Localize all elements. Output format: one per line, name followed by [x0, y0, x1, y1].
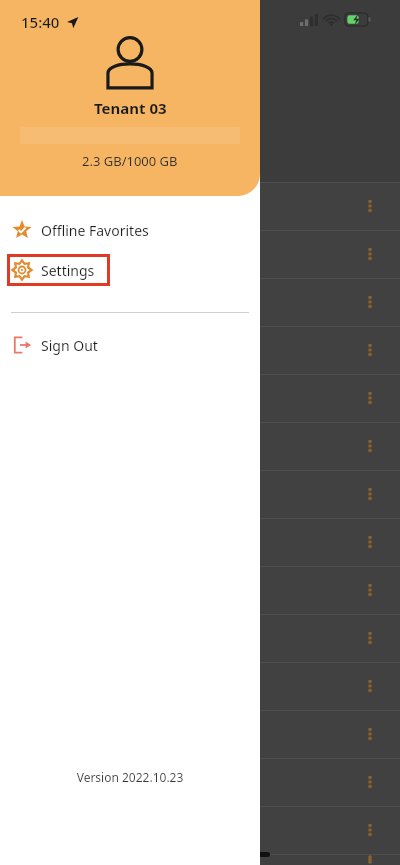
button[interactable]: Offline Favorites	[12, 220, 149, 240]
staticText: Sign Out	[41, 336, 98, 355]
button[interactable]: Settings	[12, 260, 110, 280]
button[interactable]: More options	[0, 326, 400, 374]
staticText: Tenant 03	[94, 98, 167, 118]
button[interactable]: More options	[360, 772, 380, 792]
button[interactable]: More options	[0, 518, 400, 566]
button[interactable]: More options	[360, 292, 380, 312]
button[interactable]: Sign Out	[12, 335, 98, 355]
button[interactable]: More options	[0, 854, 400, 865]
button[interactable]: More options	[360, 854, 380, 865]
button[interactable]: More options	[0, 278, 400, 326]
button[interactable]: More options	[360, 244, 380, 264]
button[interactable]: More options	[360, 580, 380, 600]
button[interactable]: More options	[360, 388, 380, 408]
button[interactable]: More options	[0, 806, 400, 854]
button[interactable]: More options	[360, 484, 380, 504]
button[interactable]: More options	[0, 614, 400, 662]
button[interactable]: More options	[0, 230, 400, 278]
button[interactable]: More options	[0, 182, 400, 230]
staticText: Settings	[41, 261, 95, 280]
button[interactable]: More options	[360, 820, 380, 840]
button[interactable]: More options	[0, 662, 400, 710]
button[interactable]: More options	[0, 422, 400, 470]
staticText: 15:40	[21, 12, 60, 32]
button[interactable]: More options	[0, 566, 400, 614]
button[interactable]: More options	[0, 758, 400, 806]
button[interactable]: More options	[360, 196, 380, 216]
button[interactable]: More options	[360, 436, 380, 456]
staticText: Version 2022.10.23	[0, 769, 260, 785]
staticText: 2.3 GB/1000 GB	[82, 152, 178, 170]
button[interactable]: More options	[0, 710, 400, 758]
button[interactable]: More options	[360, 676, 380, 696]
button[interactable]: More options	[360, 724, 380, 744]
button[interactable]: More options	[0, 374, 400, 422]
button[interactable]: More options	[0, 470, 400, 518]
staticText: Offline Favorites	[41, 221, 149, 240]
button[interactable]: More options	[360, 532, 380, 552]
button[interactable]: More options	[360, 340, 380, 360]
button[interactable]: More options	[360, 628, 380, 648]
